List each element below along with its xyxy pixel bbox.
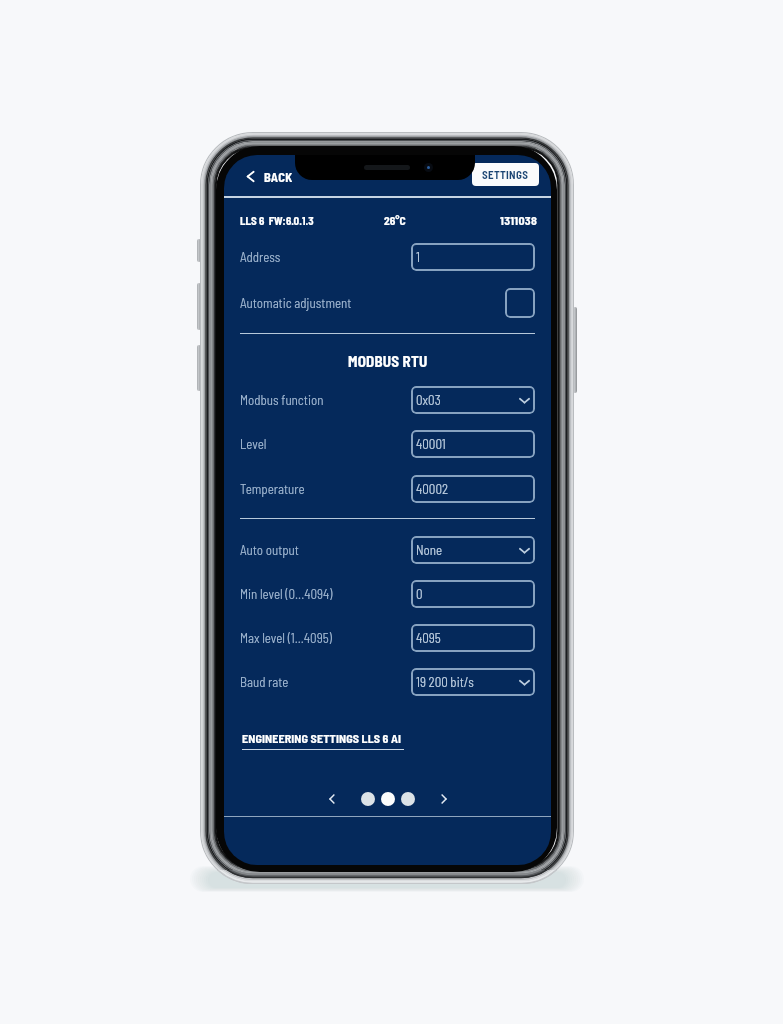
- staticText: 19 200 bit/s: [416, 674, 474, 690]
- button[interactable]: 19 200 bit/s: [411, 668, 535, 696]
- staticText: Auto output: [240, 542, 299, 558]
- staticText: Automatic adjustment: [240, 295, 352, 311]
- staticText: 1: [416, 249, 420, 265]
- button[interactable]: 40002: [411, 475, 535, 503]
- staticText: MODBUS RTU: [348, 352, 428, 370]
- button[interactable]: 0: [411, 580, 535, 608]
- staticText: Baud rate: [240, 674, 289, 690]
- button[interactable]: Previous page: [321, 788, 343, 810]
- staticText: ENGINEERING SETTINGS LLS 6 AI: [242, 731, 402, 745]
- button[interactable]: 4095: [411, 624, 535, 652]
- staticText: 40002: [416, 481, 449, 497]
- staticText: Modbus function: [240, 392, 324, 408]
- button[interactable]: BACK: [244, 163, 293, 189]
- staticText: Address: [240, 249, 281, 265]
- button[interactable]: Page indicator: [361, 792, 375, 806]
- button[interactable]: SETTINGS: [472, 163, 539, 186]
- button[interactable]: Page indicator: [401, 792, 415, 806]
- button[interactable]: Automatic adjustment checkbox: [505, 288, 535, 318]
- staticText: 0: [416, 586, 423, 602]
- button[interactable]: Page indicator: [381, 792, 395, 806]
- staticText: Level: [240, 436, 267, 452]
- staticText: 0x03: [416, 392, 441, 408]
- button[interactable]: 1: [411, 243, 535, 271]
- staticText: 1311038: [500, 213, 538, 227]
- staticText: BACK: [264, 169, 293, 184]
- staticText: 40001: [416, 436, 446, 452]
- staticText: 26°C: [384, 213, 406, 227]
- staticText: Temperature: [240, 481, 305, 497]
- staticText: Min level (0...4094): [240, 586, 333, 602]
- staticText: 4095: [416, 630, 441, 646]
- button[interactable]: 0x03: [411, 386, 535, 414]
- staticText: SETTINGS: [482, 168, 529, 181]
- staticText: Max level (1...4095): [240, 630, 332, 646]
- staticText: None: [416, 542, 443, 558]
- button[interactable]: Next page: [433, 788, 455, 810]
- button[interactable]: ENGINEERING SETTINGS LLS 6 AI: [242, 731, 404, 750]
- button[interactable]: 40001: [411, 430, 535, 458]
- button[interactable]: None: [411, 536, 535, 564]
- staticText: LLS 6 FW:6.0.1.3: [240, 214, 314, 227]
